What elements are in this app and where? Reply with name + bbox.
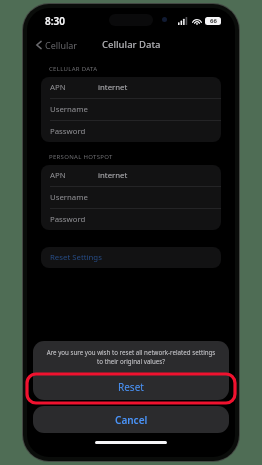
button[interactable]: Reset Settings — [41, 247, 221, 268]
button[interactable]: Cellular — [27, 36, 84, 54]
button[interactable]: APN — [41, 165, 221, 187]
button[interactable]: Cancel — [33, 406, 229, 433]
staticText: Password — [50, 214, 98, 225]
button[interactable]: Username — [41, 99, 221, 121]
staticText: Cellular — [45, 39, 78, 51]
staticText: 66 — [210, 17, 217, 25]
staticText: Username — [50, 104, 98, 115]
staticText: APN — [50, 170, 98, 181]
staticText: Are you sure you wish to reset all netwo… — [44, 348, 218, 366]
staticText: Username — [50, 192, 98, 203]
staticText: 8:30 — [45, 14, 65, 28]
staticText: internet — [98, 170, 128, 181]
staticText: Reset Settings — [50, 252, 102, 263]
staticText: Cellular Data — [102, 38, 161, 51]
staticText: PERSONAL HOTSPOT — [49, 153, 113, 161]
staticText: Password — [50, 126, 98, 137]
staticText: Reset — [118, 380, 144, 394]
staticText: CELLULAR DATA — [49, 65, 98, 73]
button[interactable]: Password — [41, 121, 221, 142]
button[interactable]: Reset — [33, 374, 229, 400]
staticText: Cancel — [115, 413, 148, 427]
button[interactable]: Password — [41, 209, 221, 230]
button[interactable]: APN — [41, 77, 221, 99]
staticText: APN — [50, 82, 98, 93]
staticText: internet — [98, 82, 128, 93]
button[interactable]: Username — [41, 187, 221, 209]
